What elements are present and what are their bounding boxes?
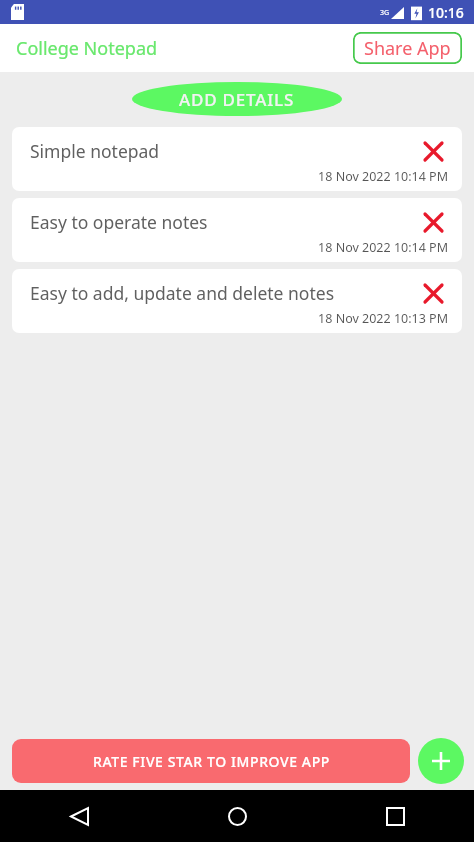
button[interactable]: Easy to operate notes <box>12 198 462 262</box>
button[interactable]: Easy to add, update and delete notes <box>12 269 462 333</box>
button[interactable]: Simple notepad <box>12 127 462 191</box>
button[interactable]: Share App <box>353 32 462 64</box>
staticText: 3G <box>380 8 390 18</box>
button[interactable]: Delete note <box>418 207 448 237</box>
button[interactable]: Recents <box>373 794 417 838</box>
staticText: ADD DETAILS <box>179 88 295 111</box>
staticText: Simple notepad <box>30 139 418 163</box>
staticText: College Notepad <box>16 36 158 61</box>
button[interactable]: Back <box>57 794 101 838</box>
staticText: RATE FIVE STAR TO IMPROVE APP <box>93 752 330 771</box>
staticText: Easy to add, update and delete notes <box>30 281 418 305</box>
button[interactable]: Delete note <box>418 278 448 308</box>
button[interactable]: RATE FIVE STAR TO IMPROVE APP <box>12 739 410 783</box>
button[interactable]: Add note <box>418 738 464 784</box>
staticText: Easy to operate notes <box>30 210 418 234</box>
button[interactable]: ADD DETAILS <box>132 82 342 116</box>
staticText: 18 Nov 2022 10:14 PM <box>12 239 448 256</box>
button[interactable]: Home <box>215 794 259 838</box>
staticText: Share App <box>364 36 451 61</box>
staticText: 10:16 <box>428 3 464 22</box>
staticText: 18 Nov 2022 10:13 PM <box>12 310 448 327</box>
staticText: 18 Nov 2022 10:14 PM <box>12 168 448 185</box>
button[interactable]: Delete note <box>418 136 448 166</box>
